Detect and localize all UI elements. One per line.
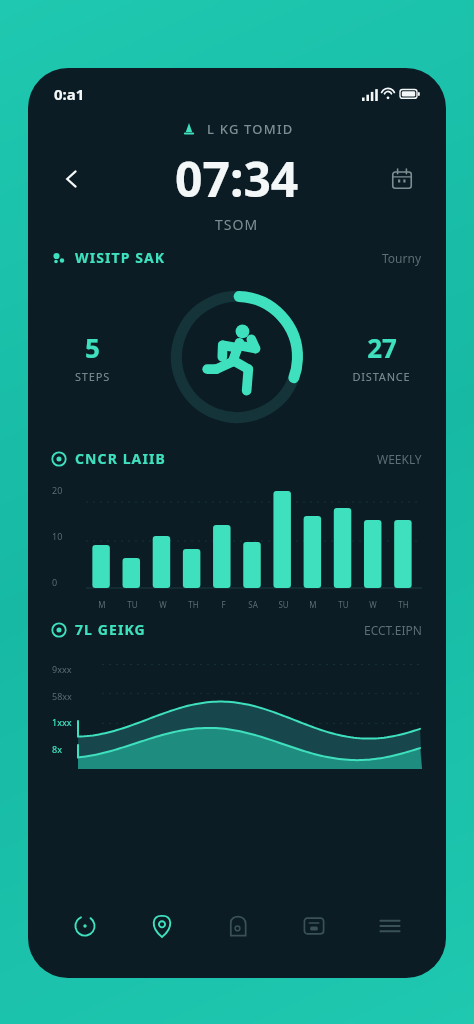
staticText: 8x (52, 743, 62, 755)
staticText: L KG TOMID (207, 120, 294, 138)
staticText: M (309, 599, 317, 610)
button[interactable]: CNCR LAIIB (52, 449, 422, 468)
staticText: 58xx (52, 690, 72, 702)
staticText: SU (278, 599, 289, 610)
button[interactable]: Location (123, 896, 200, 956)
button[interactable]: Calendar (380, 157, 424, 201)
staticText: 0 (52, 576, 58, 588)
staticText: TH (188, 599, 199, 610)
staticText: W (159, 599, 167, 610)
staticText: WEEKLY (377, 451, 422, 467)
staticText: TU (338, 599, 349, 610)
staticText: SA (248, 599, 258, 610)
staticText: CNCR LAIIB (75, 449, 166, 468)
staticText: 0:a1 (54, 84, 85, 104)
staticText: 5 (85, 330, 100, 365)
staticText: 10 (52, 530, 63, 542)
staticText: 20 (52, 484, 63, 496)
staticText: W (369, 599, 377, 610)
staticText: TH (398, 599, 409, 610)
button[interactable]: 7L GEIKG (52, 620, 422, 639)
staticText: M (98, 599, 106, 610)
staticText: 1xxx (52, 716, 72, 728)
staticText: WISITP SAK (75, 248, 166, 267)
button[interactable]: WISITP SAK (52, 248, 422, 267)
staticText: 27 (367, 330, 397, 365)
staticText: F (221, 599, 226, 610)
button[interactable]: Activity (46, 896, 123, 956)
staticText: 07:34 (175, 146, 299, 211)
staticText: Tourny (382, 250, 422, 266)
staticText: TU (127, 599, 138, 610)
button[interactable]: 5 (28, 330, 157, 384)
button[interactable]: Card (276, 896, 352, 956)
staticText: 7L GEIKG (75, 620, 146, 639)
staticText: ECCT.EIPN (364, 622, 422, 638)
staticText: 9xxx (52, 663, 72, 675)
button[interactable]: Profile (200, 896, 276, 956)
staticText: TSOM (215, 215, 259, 234)
staticText: STEPS (75, 369, 110, 384)
button[interactable]: 27 (317, 330, 446, 384)
button[interactable]: Back (50, 157, 94, 201)
staticText: DISTANCE (352, 369, 411, 384)
button[interactable]: Menu (352, 896, 428, 956)
